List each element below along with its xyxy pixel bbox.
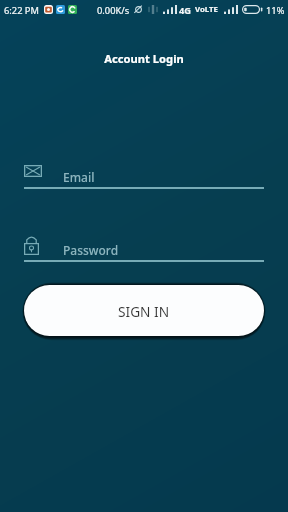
staticText: 0.00K/s xyxy=(97,4,130,17)
staticText: Account Login xyxy=(0,51,288,66)
other: Alarm off xyxy=(133,5,144,14)
staticText: 6:22 PM xyxy=(4,4,39,17)
staticText: 4G xyxy=(179,4,192,17)
staticText: SIGN IN xyxy=(118,302,170,321)
staticText: Email xyxy=(63,169,95,185)
other: Password xyxy=(24,235,39,255)
staticText: VoLTE xyxy=(195,4,218,15)
button[interactable]: Email xyxy=(24,159,264,189)
other: Email xyxy=(24,165,42,177)
button[interactable]: Password xyxy=(24,232,264,262)
staticText: Password xyxy=(63,242,119,258)
staticText: 11% xyxy=(266,4,285,17)
button[interactable]: SIGN IN xyxy=(24,285,264,336)
